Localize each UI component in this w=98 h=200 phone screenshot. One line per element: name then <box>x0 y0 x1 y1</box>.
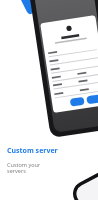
staticText: Custom server <box>7 146 58 156</box>
staticText: Custom your servers <box>7 161 41 175</box>
